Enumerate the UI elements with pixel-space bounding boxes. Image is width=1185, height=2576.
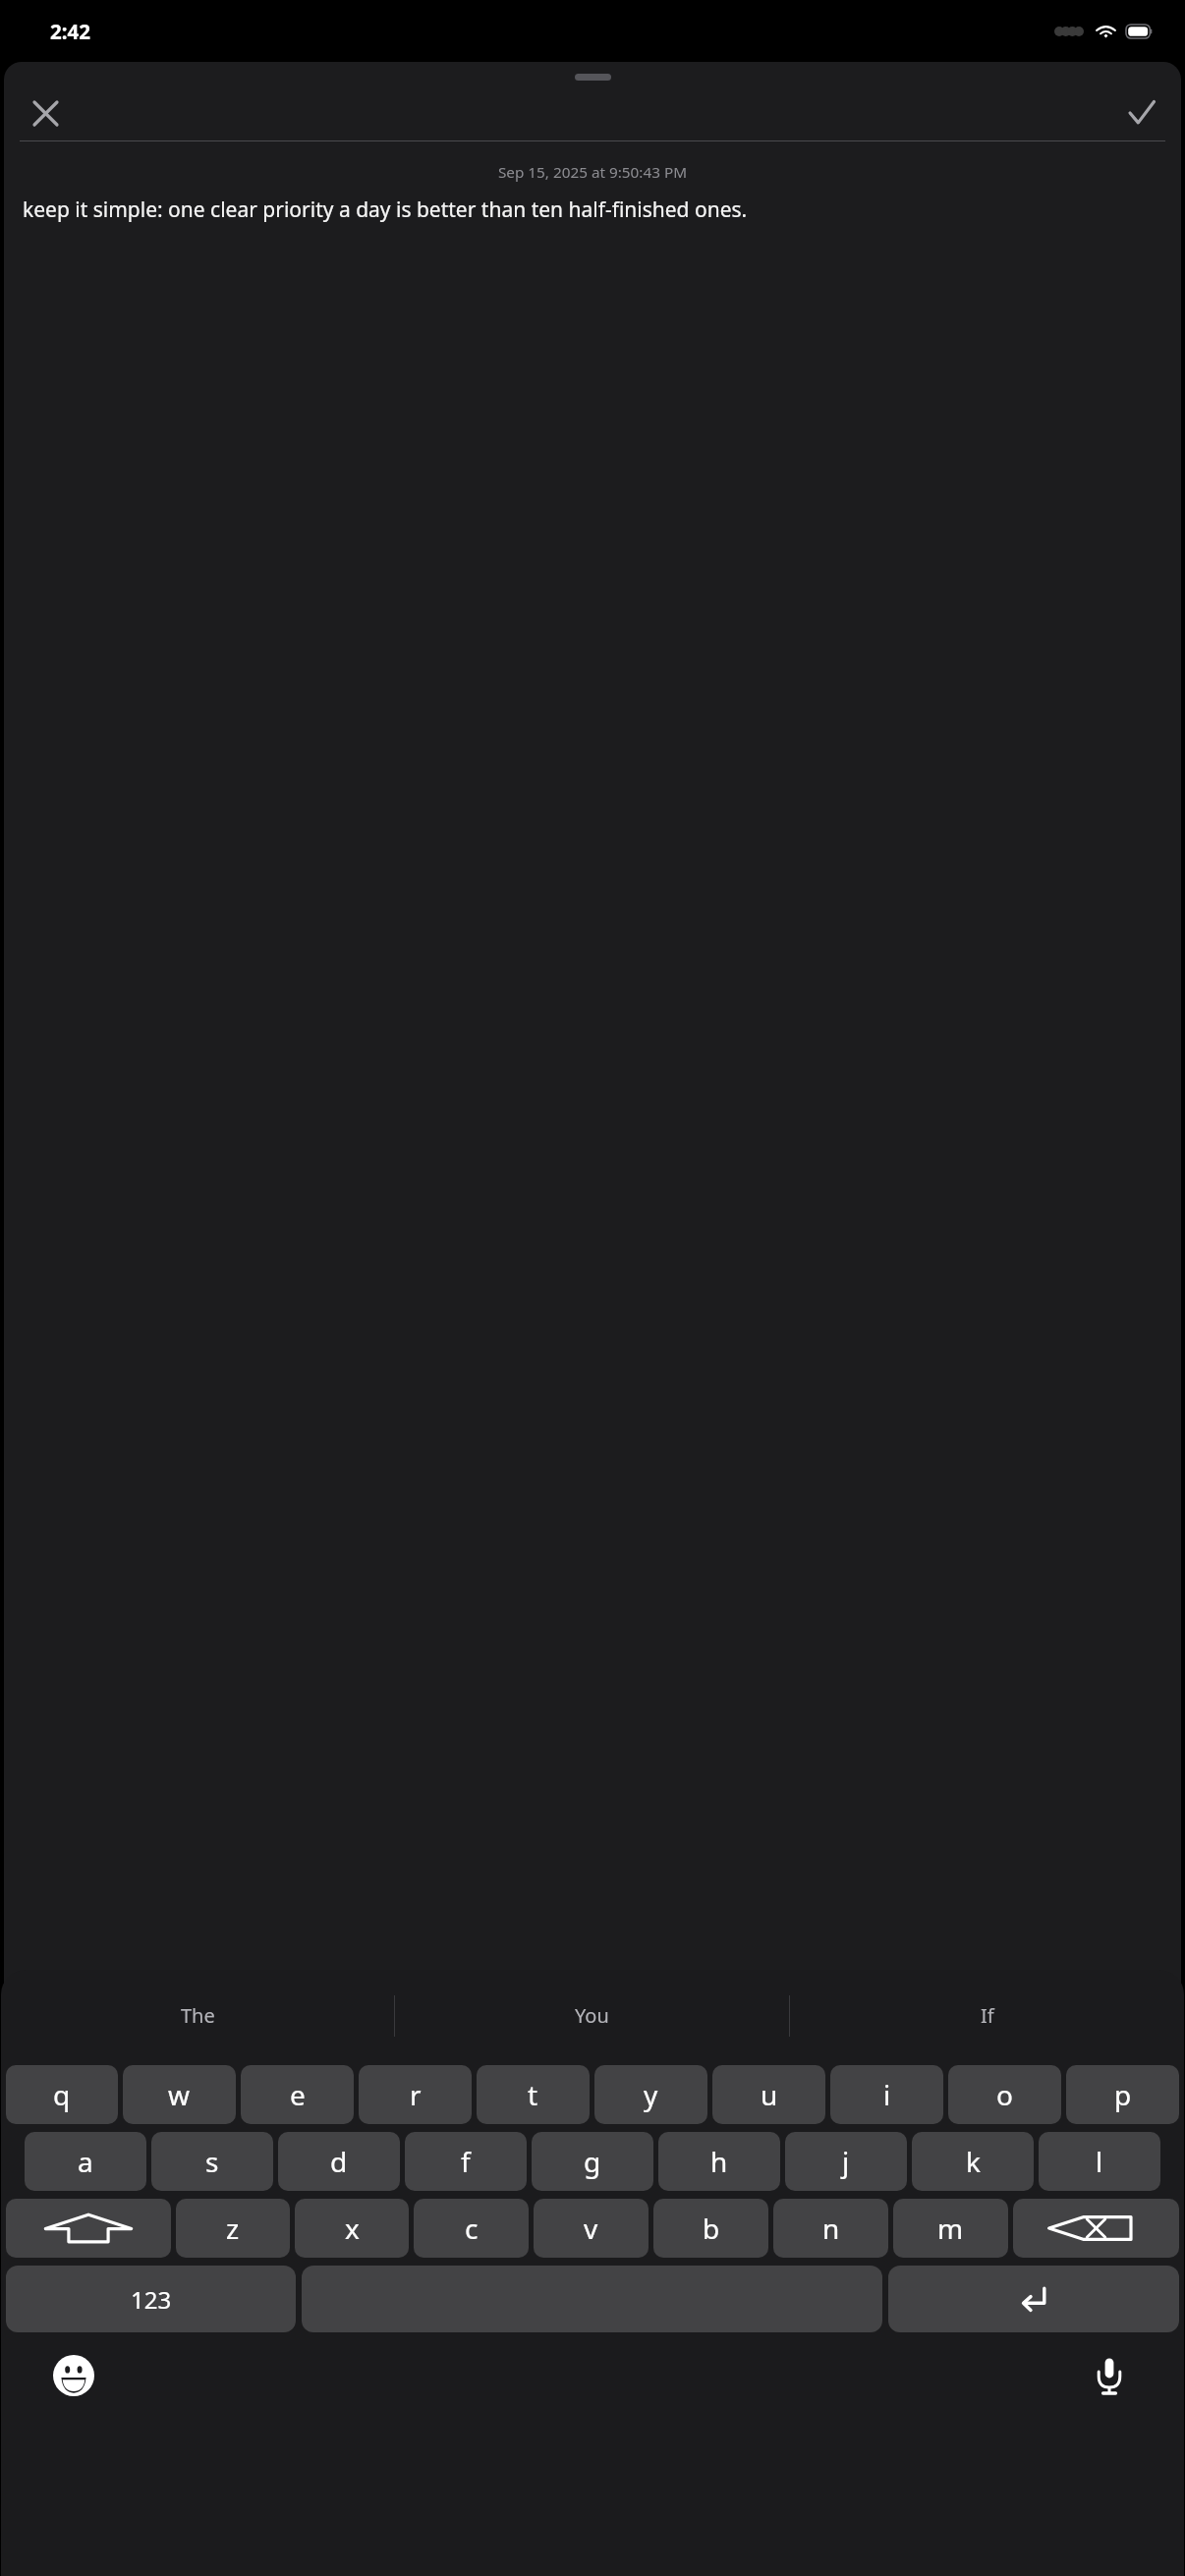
- button[interactable]: f: [405, 2132, 527, 2191]
- button[interactable]: x: [295, 2199, 409, 2258]
- button[interactable]: e: [241, 2065, 354, 2124]
- button[interactable]: c: [414, 2199, 529, 2258]
- staticText: u: [761, 2076, 778, 2113]
- button[interactable]: q: [6, 2065, 118, 2124]
- staticText: y: [644, 2076, 658, 2113]
- staticText: k: [966, 2143, 981, 2180]
- button[interactable]: 123: [6, 2266, 296, 2332]
- staticText: q: [53, 2076, 71, 2113]
- staticText: l: [1096, 2143, 1103, 2180]
- button[interactable]: j: [785, 2132, 907, 2191]
- staticText: j: [842, 2143, 850, 2180]
- button[interactable]: z: [176, 2199, 290, 2258]
- staticText: x: [345, 2210, 360, 2247]
- button[interactable]: You: [395, 1970, 789, 2061]
- button[interactable]: w: [123, 2065, 236, 2124]
- button[interactable]: l: [1039, 2132, 1160, 2191]
- staticText: s: [205, 2143, 219, 2180]
- staticText: p: [1114, 2076, 1132, 2113]
- staticText: i: [883, 2076, 891, 2113]
- staticText: 123: [131, 2283, 172, 2316]
- button[interactable]: k: [912, 2132, 1034, 2191]
- staticText: d: [330, 2143, 348, 2180]
- button[interactable]: The: [1, 1970, 394, 2061]
- button[interactable]: Enter: [888, 2266, 1179, 2332]
- button[interactable]: v: [534, 2199, 649, 2258]
- staticText: Sep 15, 2025 at 9:50:43 PM: [4, 162, 1181, 183]
- button[interactable]: keep it simple: one clear priority a day…: [23, 196, 1162, 224]
- staticText: If: [981, 2002, 994, 2029]
- button[interactable]: m: [893, 2199, 1008, 2258]
- button[interactable]: g: [532, 2132, 653, 2191]
- button[interactable]: Backspace: [1013, 2199, 1179, 2258]
- button[interactable]: p: [1066, 2065, 1179, 2124]
- staticText: The: [181, 2002, 215, 2029]
- staticText: e: [290, 2076, 306, 2113]
- button[interactable]: h: [658, 2132, 780, 2191]
- button[interactable]: b: [653, 2199, 768, 2258]
- button[interactable]: Voice input: [1084, 2350, 1135, 2401]
- button[interactable]: i: [830, 2065, 943, 2124]
- staticText: 2:42: [50, 18, 90, 45]
- staticText: v: [584, 2210, 598, 2247]
- staticText: b: [703, 2210, 720, 2247]
- button[interactable]: t: [477, 2065, 590, 2124]
- button[interactable]: s: [151, 2132, 273, 2191]
- staticText: h: [710, 2143, 728, 2180]
- staticText: c: [465, 2210, 479, 2247]
- button[interactable]: r: [359, 2065, 472, 2124]
- staticText: f: [461, 2143, 471, 2180]
- button[interactable]: u: [712, 2065, 825, 2124]
- button[interactable]: d: [278, 2132, 400, 2191]
- button[interactable]: Close: [20, 87, 71, 139]
- button[interactable]: n: [773, 2199, 888, 2258]
- button[interactable]: If: [790, 1970, 1184, 2061]
- staticText: w: [168, 2076, 191, 2113]
- staticText: t: [528, 2076, 538, 2113]
- button[interactable]: y: [594, 2065, 707, 2124]
- staticText: o: [996, 2076, 1013, 2113]
- staticText: r: [410, 2076, 422, 2113]
- staticText: m: [937, 2210, 964, 2247]
- staticText: keep it simple: one clear priority a day…: [23, 196, 748, 224]
- button[interactable]: a: [25, 2132, 146, 2191]
- staticText: a: [78, 2143, 93, 2180]
- staticText: You: [575, 2002, 609, 2029]
- staticText: g: [584, 2143, 601, 2180]
- button[interactable]: Shift: [6, 2199, 171, 2258]
- button[interactable]: o: [948, 2065, 1061, 2124]
- staticText: n: [822, 2210, 840, 2247]
- staticText: z: [226, 2210, 240, 2247]
- button[interactable]: Emoji: [48, 2350, 99, 2401]
- button[interactable]: Save: [1116, 87, 1167, 139]
